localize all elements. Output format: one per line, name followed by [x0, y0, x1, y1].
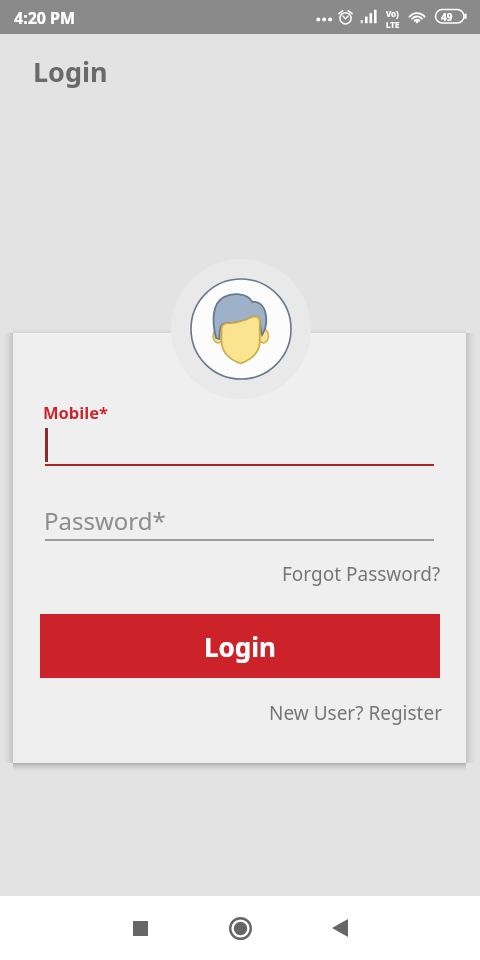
staticText: LTE: [386, 19, 400, 30]
button[interactable]: Password*: [45, 500, 434, 541]
staticText: Vo): [386, 8, 399, 19]
staticText: 49: [441, 10, 453, 24]
button[interactable]: Mobile*: [45, 396, 434, 466]
button[interactable]: Back: [309, 897, 371, 959]
button[interactable]: Forgot Password?: [282, 561, 441, 587]
staticText: Login: [33, 53, 108, 90]
button[interactable]: New User? Register: [269, 700, 443, 726]
staticText: New User? Register: [269, 700, 443, 726]
button[interactable]: Recent apps: [109, 897, 171, 959]
button[interactable]: Home: [209, 897, 271, 959]
button[interactable]: Login: [40, 614, 440, 678]
staticText: Password*: [44, 504, 166, 537]
staticText: Forgot Password?: [282, 561, 441, 587]
staticText: Login: [204, 629, 276, 664]
staticText: 4:20 PM: [14, 7, 76, 29]
staticText: Mobile*: [43, 401, 108, 423]
